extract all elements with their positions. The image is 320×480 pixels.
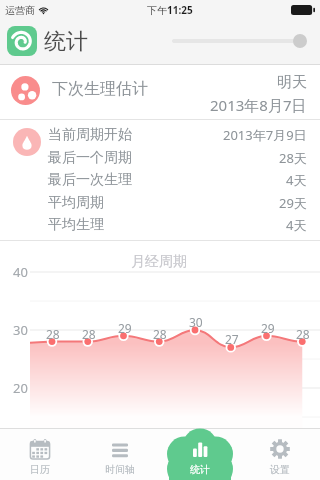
staticText: 最后一次生理 (48, 171, 132, 189)
staticText: 29 (261, 320, 275, 336)
button[interactable]: 当前周期开始 (0, 124, 320, 146)
staticText: 4天 (286, 171, 307, 189)
button[interactable]: 平均周期 (0, 192, 320, 214)
staticText: 28 (46, 326, 60, 342)
staticText: 日历 (30, 463, 50, 476)
staticText: 平均生理 (48, 216, 104, 234)
staticText: 28 (82, 326, 96, 342)
button[interactable]: 设置 (240, 428, 320, 480)
staticText: 下午 (147, 4, 167, 17)
staticText: 11:25 (167, 3, 193, 17)
staticText: 下次生理估计 (52, 79, 148, 99)
button[interactable]: Zoom slider (168, 32, 312, 50)
staticText: 29天 (279, 194, 307, 212)
staticText: 30 (13, 321, 28, 339)
staticText: 运营商 (5, 4, 35, 17)
button[interactable]: 下次生理估计 (0, 65, 320, 119)
staticText: 27 (225, 331, 239, 347)
staticText: 30 (189, 314, 203, 330)
staticText: 时间轴 (105, 463, 135, 476)
button[interactable]: 日历 (0, 428, 80, 480)
staticText: 统计 (190, 463, 210, 476)
button[interactable]: App logo (7, 26, 37, 56)
staticText: 28 (296, 326, 310, 342)
staticText: 设置 (270, 463, 290, 476)
button[interactable]: 统计 (160, 428, 240, 480)
staticText: 明天 (277, 73, 307, 92)
staticText: 当前周期开始 (48, 126, 132, 144)
staticText: 28 (153, 326, 167, 342)
staticText: 40 (13, 263, 28, 281)
staticText: 平均周期 (48, 194, 104, 212)
staticText: 月经周期 (131, 253, 187, 271)
button[interactable]: 平均生理 (0, 214, 320, 236)
staticText: 20 (13, 379, 28, 397)
button[interactable]: 最后一个周期 (0, 147, 320, 169)
staticText: 4天 (286, 216, 307, 234)
button[interactable]: 时间轴 (80, 428, 160, 480)
button[interactable]: 最后一次生理 (0, 169, 320, 191)
staticText: 29 (118, 320, 132, 336)
staticText: 2013年7月9日 (223, 126, 307, 144)
staticText: 统计 (44, 28, 88, 56)
staticText: 28天 (279, 149, 307, 167)
staticText: 最后一个周期 (48, 149, 132, 167)
staticText: 2013年8月7日 (210, 95, 307, 115)
